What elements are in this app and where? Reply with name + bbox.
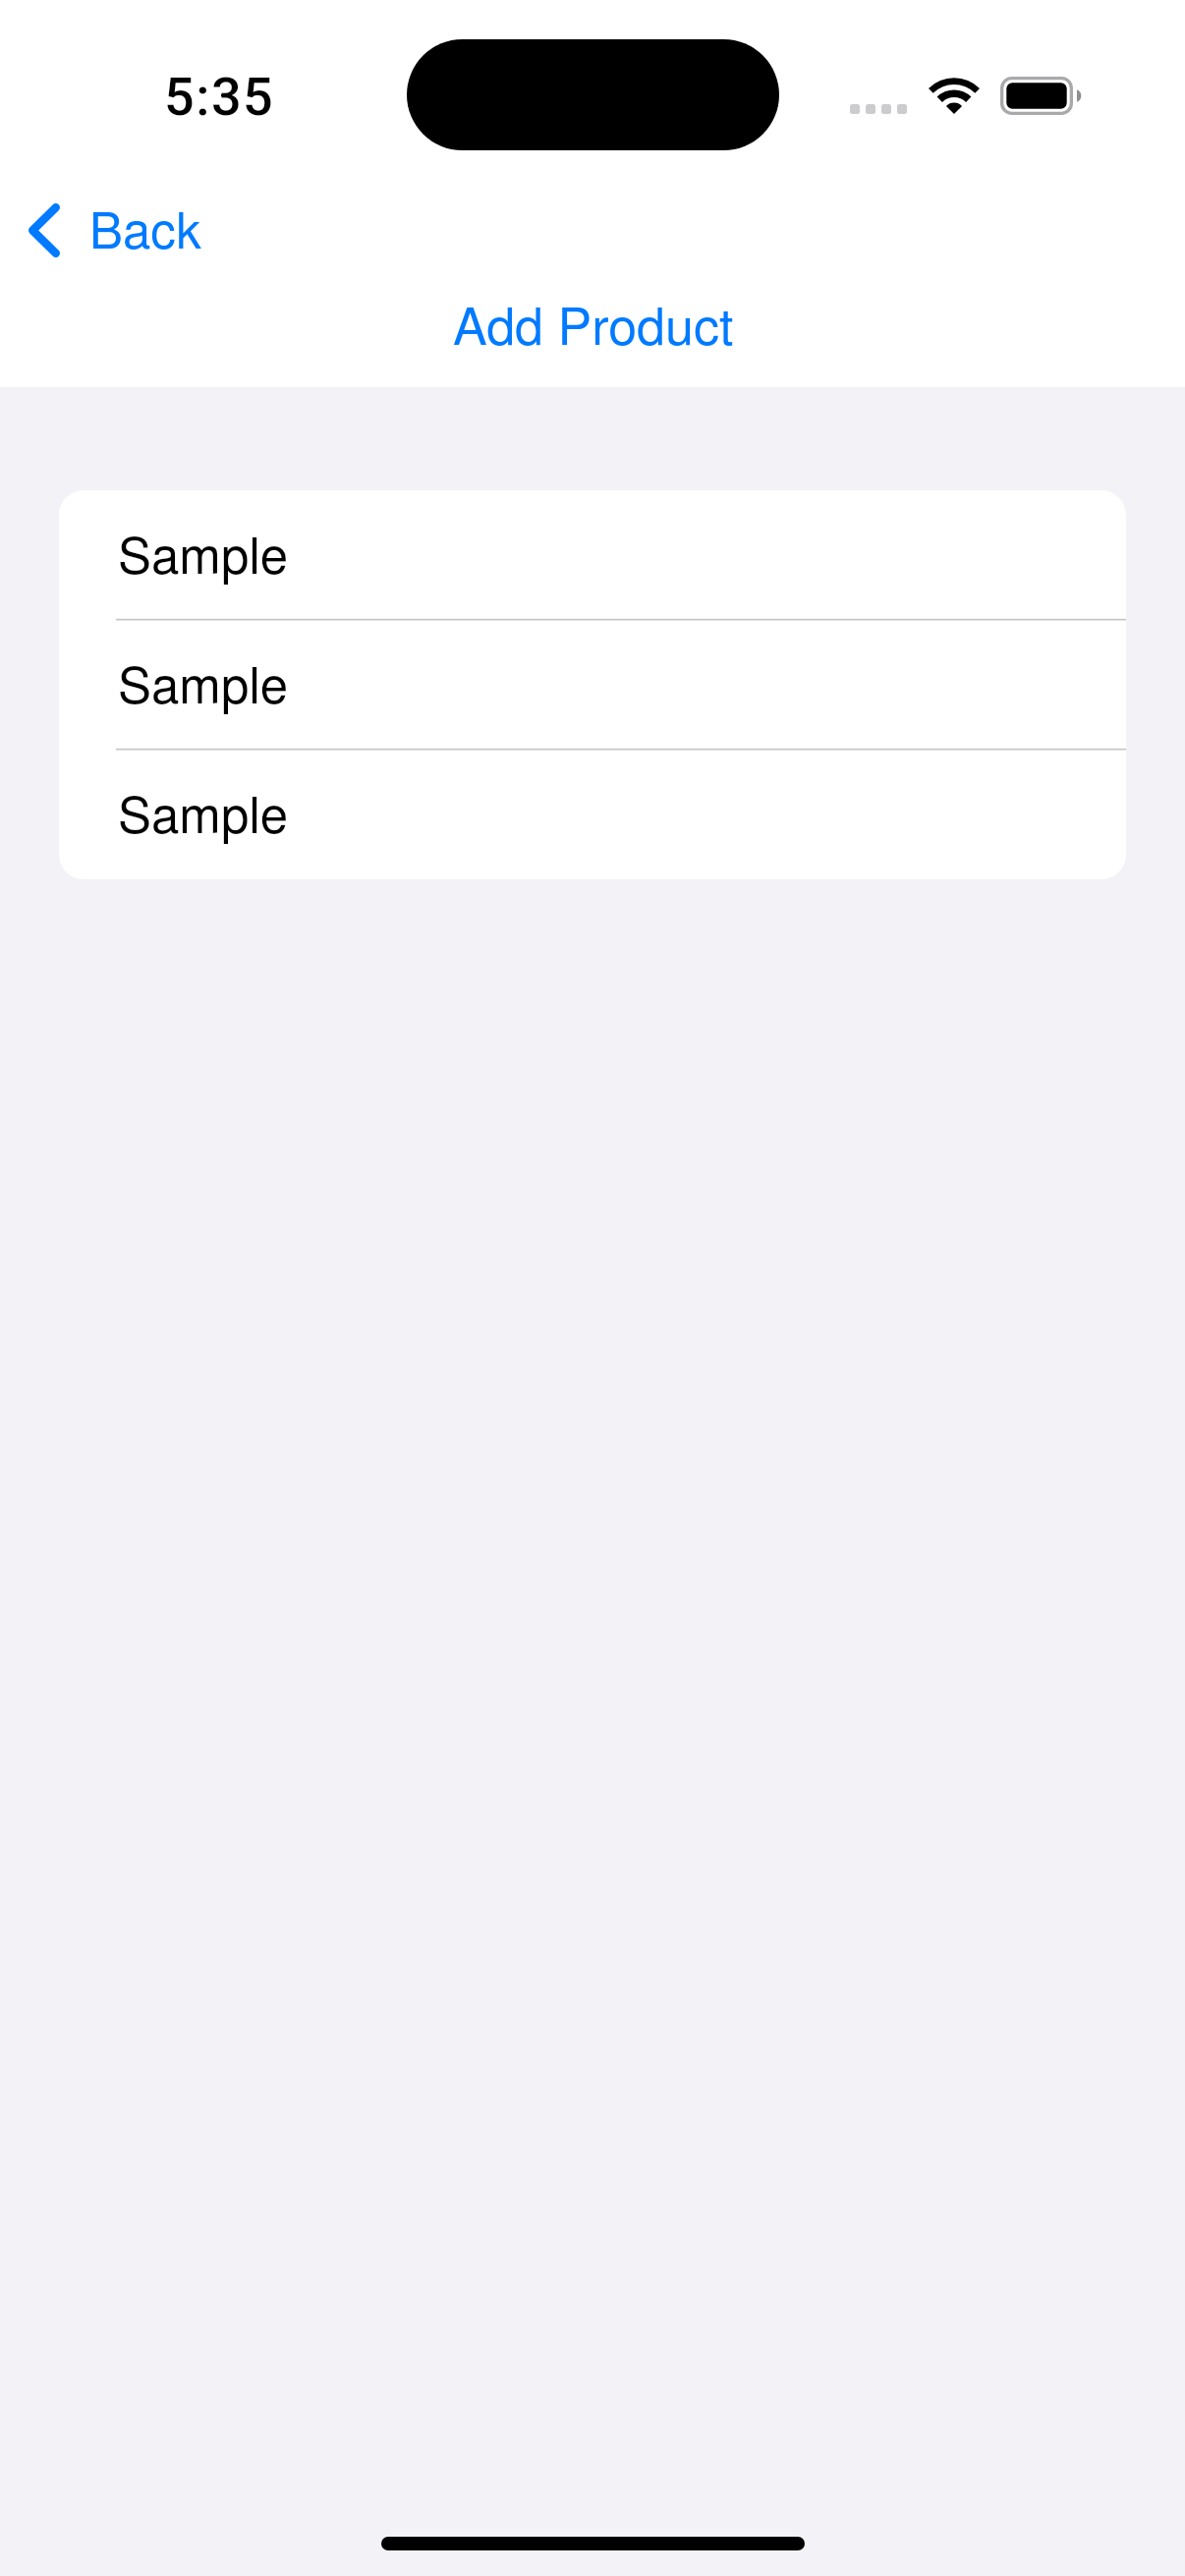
other: Wi-Fi [929,77,980,114]
staticText: Sample [118,645,289,717]
staticText: 5:35 [164,66,275,128]
button[interactable]: Back [8,183,222,277]
button[interactable]: Sample [59,620,1126,750]
other: Battery full [1000,77,1082,115]
staticText: Back [89,191,201,262]
staticText: Sample [118,775,289,847]
button[interactable]: Sample [59,490,1126,620]
button[interactable]: Sample [59,750,1126,879]
staticText: Sample [118,516,289,588]
staticText: Add Product [453,286,734,359]
